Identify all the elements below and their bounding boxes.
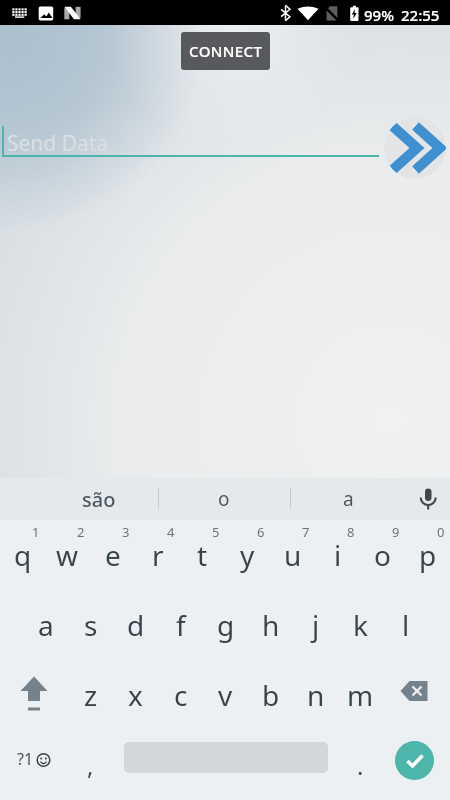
staticText: 3 xyxy=(122,523,130,541)
staticText: l xyxy=(402,606,410,644)
button[interactable]: k xyxy=(338,590,383,660)
staticText: 0 xyxy=(437,523,445,541)
button[interactable]: n xyxy=(293,660,338,730)
staticText: i xyxy=(334,536,342,574)
staticText: CONNECT xyxy=(189,41,263,61)
button[interactable]: t xyxy=(180,520,225,590)
staticText: g xyxy=(217,606,235,644)
button[interactable]: são xyxy=(40,478,158,520)
button[interactable]: y xyxy=(225,520,270,590)
button[interactable]: h xyxy=(248,590,293,660)
button[interactable]: a xyxy=(290,478,406,520)
button[interactable]: v xyxy=(203,660,248,730)
staticText: , xyxy=(87,749,94,782)
staticText: f xyxy=(176,606,186,644)
button[interactable]: e xyxy=(90,520,135,590)
button[interactable]: w xyxy=(45,520,90,590)
button[interactable]: z xyxy=(68,660,113,730)
staticText: t xyxy=(197,536,208,574)
button[interactable] xyxy=(384,117,446,179)
staticText: 99% xyxy=(364,5,394,25)
staticText: Send Data xyxy=(7,129,109,158)
staticText: ?1 xyxy=(17,748,34,770)
staticText: r xyxy=(152,536,164,574)
button[interactable]: f xyxy=(158,590,203,660)
button[interactable]: Send Data xyxy=(0,110,380,170)
staticText: k xyxy=(353,606,368,644)
staticText: n xyxy=(307,676,325,714)
staticText: x xyxy=(128,676,143,714)
button[interactable] xyxy=(0,660,68,730)
button[interactable] xyxy=(406,478,450,520)
button[interactable]: d xyxy=(113,590,158,660)
staticText: o xyxy=(374,536,391,574)
button[interactable]: o xyxy=(158,478,290,520)
staticText: a xyxy=(343,486,354,512)
staticText: w xyxy=(56,536,79,574)
button[interactable]: m xyxy=(338,660,383,730)
staticText: 1 xyxy=(32,523,40,541)
staticText: d xyxy=(127,606,145,644)
staticText: u xyxy=(284,536,302,574)
button[interactable]: u xyxy=(270,520,315,590)
staticText: h xyxy=(262,606,280,644)
button[interactable]: j xyxy=(293,590,338,660)
button[interactable]: , xyxy=(68,730,113,800)
staticText: q xyxy=(14,536,32,574)
staticText: c xyxy=(174,676,188,714)
button[interactable]: b xyxy=(248,660,293,730)
button[interactable]: g xyxy=(203,590,248,660)
button[interactable] xyxy=(113,730,338,800)
staticText: 4 xyxy=(167,523,175,541)
button[interactable]: c xyxy=(158,660,203,730)
staticText: e xyxy=(105,536,121,574)
staticText: y xyxy=(240,536,255,574)
staticText: b xyxy=(262,676,280,714)
button[interactable]: a xyxy=(23,590,68,660)
button[interactable]: r xyxy=(135,520,180,590)
staticText: 6 xyxy=(257,523,265,541)
staticText: p xyxy=(419,536,437,574)
button[interactable]: q xyxy=(0,520,45,590)
button[interactable] xyxy=(383,660,450,730)
staticText: . xyxy=(357,749,364,782)
button[interactable]: CONNECT xyxy=(181,32,270,70)
button[interactable]: p xyxy=(405,520,450,590)
button[interactable]: o xyxy=(360,520,405,590)
staticText: o xyxy=(218,486,230,512)
staticText: j xyxy=(312,606,320,644)
button[interactable]: l xyxy=(383,590,428,660)
staticText: 8 xyxy=(347,523,355,541)
button[interactable]: s xyxy=(68,590,113,660)
staticText: 9 xyxy=(392,523,400,541)
staticText: 7 xyxy=(302,523,310,541)
staticText: m xyxy=(347,676,374,714)
staticText: a xyxy=(38,606,54,644)
button[interactable]: x xyxy=(113,660,158,730)
button[interactable]: ?1 xyxy=(0,730,68,800)
button[interactable] xyxy=(383,730,450,800)
staticText: z xyxy=(84,676,98,714)
staticText: 2 xyxy=(77,523,85,541)
staticText: são xyxy=(82,486,116,513)
button[interactable]: i xyxy=(315,520,360,590)
staticText: 5 xyxy=(212,523,220,541)
staticText: s xyxy=(84,606,98,644)
staticText: 22:55 xyxy=(401,5,440,25)
button[interactable]: . xyxy=(338,730,383,800)
staticText: v xyxy=(218,676,233,714)
